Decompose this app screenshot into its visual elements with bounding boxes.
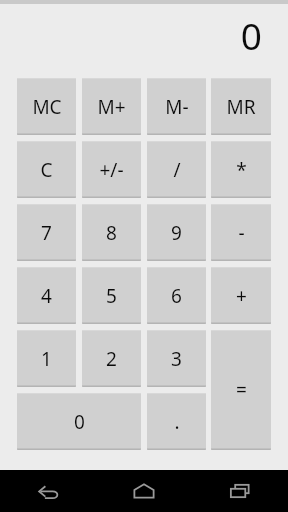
staticText: 7 xyxy=(41,220,52,246)
staticText: . xyxy=(174,409,180,435)
staticText: = xyxy=(236,377,247,403)
staticText: 8 xyxy=(106,220,117,246)
button[interactable]: 2 xyxy=(82,330,141,387)
button[interactable]: + xyxy=(211,267,271,324)
button[interactable]: 5 xyxy=(82,267,141,324)
button[interactable]: M- xyxy=(147,78,206,135)
button[interactable]: Recent apps xyxy=(192,470,288,512)
button[interactable]: 6 xyxy=(147,267,206,324)
button[interactable]: 9 xyxy=(147,204,206,261)
button[interactable]: MR xyxy=(211,78,271,135)
staticText: - xyxy=(238,220,245,246)
staticText: +/- xyxy=(99,157,124,183)
staticText: * xyxy=(236,157,247,183)
button[interactable]: +/- xyxy=(82,141,141,198)
button[interactable]: 7 xyxy=(17,204,76,261)
staticText: 0 xyxy=(240,10,262,60)
button[interactable]: 8 xyxy=(82,204,141,261)
staticText: 3 xyxy=(171,346,182,372)
staticText: M- xyxy=(165,94,189,120)
staticText: 6 xyxy=(171,283,182,309)
button[interactable]: Back xyxy=(0,470,96,512)
button[interactable]: M+ xyxy=(82,78,141,135)
staticText: 0 xyxy=(74,409,85,435)
button[interactable]: / xyxy=(147,141,206,198)
staticText: 1 xyxy=(41,346,52,372)
staticText: M+ xyxy=(97,94,126,120)
staticText: MC xyxy=(32,94,62,120)
button[interactable]: Home xyxy=(96,470,192,512)
staticText: + xyxy=(236,283,247,309)
staticText: / xyxy=(173,157,181,183)
button[interactable]: . xyxy=(147,393,206,450)
button[interactable]: 4 xyxy=(17,267,76,324)
button[interactable]: = xyxy=(211,330,271,450)
staticText: 9 xyxy=(171,220,182,246)
button[interactable]: 1 xyxy=(17,330,76,387)
button[interactable]: C xyxy=(17,141,76,198)
button[interactable]: MC xyxy=(17,78,76,135)
button[interactable]: - xyxy=(211,204,271,261)
staticText: MR xyxy=(226,94,256,120)
button[interactable]: * xyxy=(211,141,271,198)
staticText: C xyxy=(40,157,53,183)
staticText: 2 xyxy=(106,346,117,372)
staticText: 5 xyxy=(106,283,117,309)
button[interactable]: 0 xyxy=(17,393,141,450)
staticText: 4 xyxy=(41,283,52,309)
button[interactable]: 3 xyxy=(147,330,206,387)
